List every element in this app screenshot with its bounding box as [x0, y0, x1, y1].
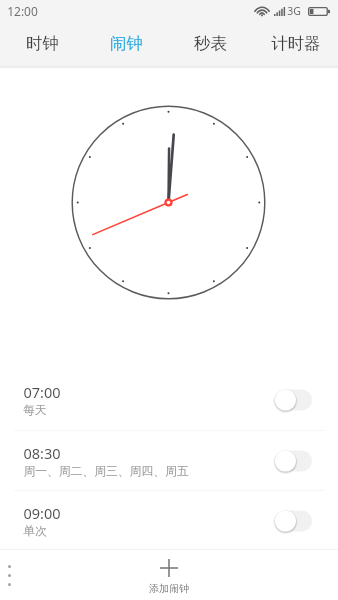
- button[interactable]: Toggle alarm: [275, 388, 312, 412]
- button[interactable]: More options: [0, 555, 18, 595]
- button[interactable]: 08:30: [0, 431, 338, 490]
- staticText: 3G: [287, 4, 301, 18]
- staticText: 09:00: [23, 503, 61, 523]
- staticText: 秒表: [194, 33, 227, 54]
- staticText: 添加闹钟: [149, 582, 189, 595]
- staticText: 07:00: [23, 382, 61, 402]
- staticText: 08:30: [23, 443, 61, 463]
- button[interactable]: 添加闹钟: [149, 559, 189, 595]
- staticText: 每天: [23, 403, 47, 418]
- button[interactable]: 秒表: [168, 22, 253, 66]
- staticText: 时钟: [26, 33, 59, 54]
- staticText: 12:00: [7, 3, 38, 19]
- staticText: 单次: [23, 524, 47, 539]
- button[interactable]: 09:00: [0, 491, 338, 550]
- staticText: 周一、周二、周三、周四、周五: [23, 464, 189, 479]
- staticText: 闹钟: [110, 33, 143, 54]
- button[interactable]: 时钟: [0, 22, 84, 66]
- button[interactable]: Toggle alarm: [275, 449, 312, 473]
- button[interactable]: 计时器: [253, 22, 338, 66]
- button[interactable]: Toggle alarm: [275, 509, 312, 533]
- button[interactable]: 闹钟: [84, 22, 168, 66]
- staticText: 计时器: [271, 33, 321, 54]
- button[interactable]: 07:00: [0, 370, 338, 430]
